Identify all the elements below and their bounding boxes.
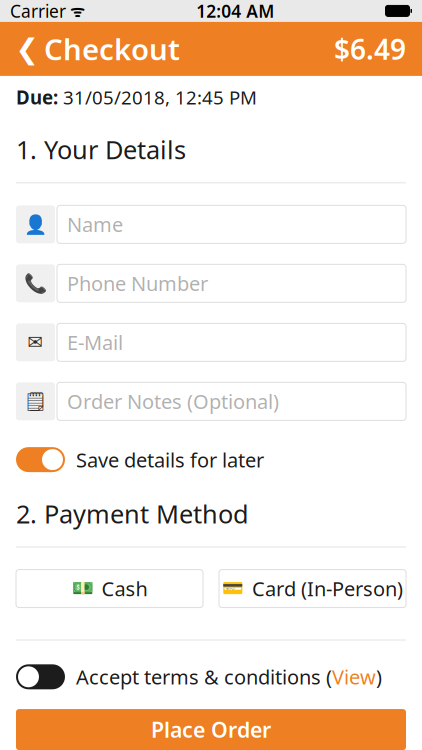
staticText: 💵 (71, 579, 93, 598)
staticText: Place Order (151, 715, 271, 744)
staticText: ᯤ (66, 0, 85, 21)
staticText: 👤 (24, 214, 47, 235)
staticText: ❮ (15, 33, 38, 65)
staticText: Accept terms & conditions ( (76, 663, 332, 690)
staticText: Carrier (10, 0, 66, 22)
staticText: 2. Payment Method (16, 497, 249, 530)
staticText: 1. Your Details (16, 133, 186, 166)
staticText: $6.49 (334, 30, 406, 67)
staticText: View (332, 663, 376, 690)
staticText: Cash (101, 575, 147, 602)
button[interactable]: Accept terms & conditions ( (0, 663, 422, 690)
staticText: Phone Number (67, 270, 208, 297)
staticText: Card (In-Person) (252, 575, 403, 602)
staticText: E-Mail (67, 329, 123, 356)
staticText: 12:04 AM (196, 0, 274, 22)
staticText: 31/05/2018, 12:45 PM (58, 85, 257, 110)
staticText: ✉ (27, 332, 43, 353)
staticText: Checkout (44, 29, 180, 68)
button[interactable]: 💵 (16, 569, 203, 607)
button[interactable]: Place Order (16, 709, 406, 750)
staticText: Name (67, 211, 123, 238)
staticText: 💳 (222, 579, 244, 598)
staticText: Save details for later (76, 446, 264, 473)
button[interactable]: Back (10, 22, 44, 76)
staticText: 🗒 (23, 391, 47, 412)
button[interactable]: Save details for later (0, 446, 422, 473)
staticText: Due: (16, 85, 58, 110)
staticText: Order Notes (Optional) (67, 388, 279, 415)
button[interactable]: 💳 (219, 569, 406, 607)
staticText: ) (376, 663, 382, 690)
staticText: 📞 (24, 273, 47, 294)
